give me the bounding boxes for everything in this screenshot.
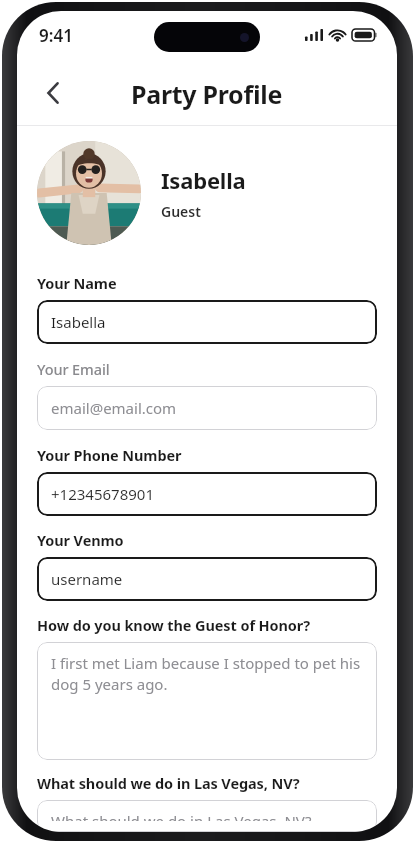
staticText: Isabella	[161, 165, 246, 195]
staticText: Isabella	[51, 312, 106, 332]
staticText: Your Name	[37, 273, 117, 293]
staticText: Your Phone Number	[37, 445, 182, 465]
button[interactable]: email@email.com	[37, 386, 377, 430]
staticText: Your Venmo	[37, 530, 124, 550]
staticText: I first met Liam because I stopped to pe…	[51, 653, 363, 695]
staticText: Guest	[161, 202, 201, 221]
staticText: 9:41	[39, 24, 73, 47]
staticText: How do you know the Guest of Honor?	[37, 615, 310, 635]
button[interactable]: I first met Liam because I stopped to pe…	[37, 642, 377, 760]
button[interactable]: username	[37, 557, 377, 601]
staticText: +12345678901	[51, 484, 154, 504]
button[interactable]: What should we do in Las Vegas, NV?	[37, 800, 377, 832]
staticText: Party Profile	[131, 77, 283, 111]
staticText: What should we do in Las Vegas, NV?	[37, 773, 300, 793]
staticText: What should we do in Las Vegas, NV?	[51, 811, 312, 821]
button[interactable]: Back	[31, 71, 75, 115]
staticText: Your Email	[37, 359, 110, 379]
button[interactable]: Isabella	[37, 300, 377, 344]
button[interactable]: +12345678901	[37, 472, 377, 516]
staticText: username	[51, 569, 123, 589]
staticText: email@email.com	[51, 398, 177, 418]
